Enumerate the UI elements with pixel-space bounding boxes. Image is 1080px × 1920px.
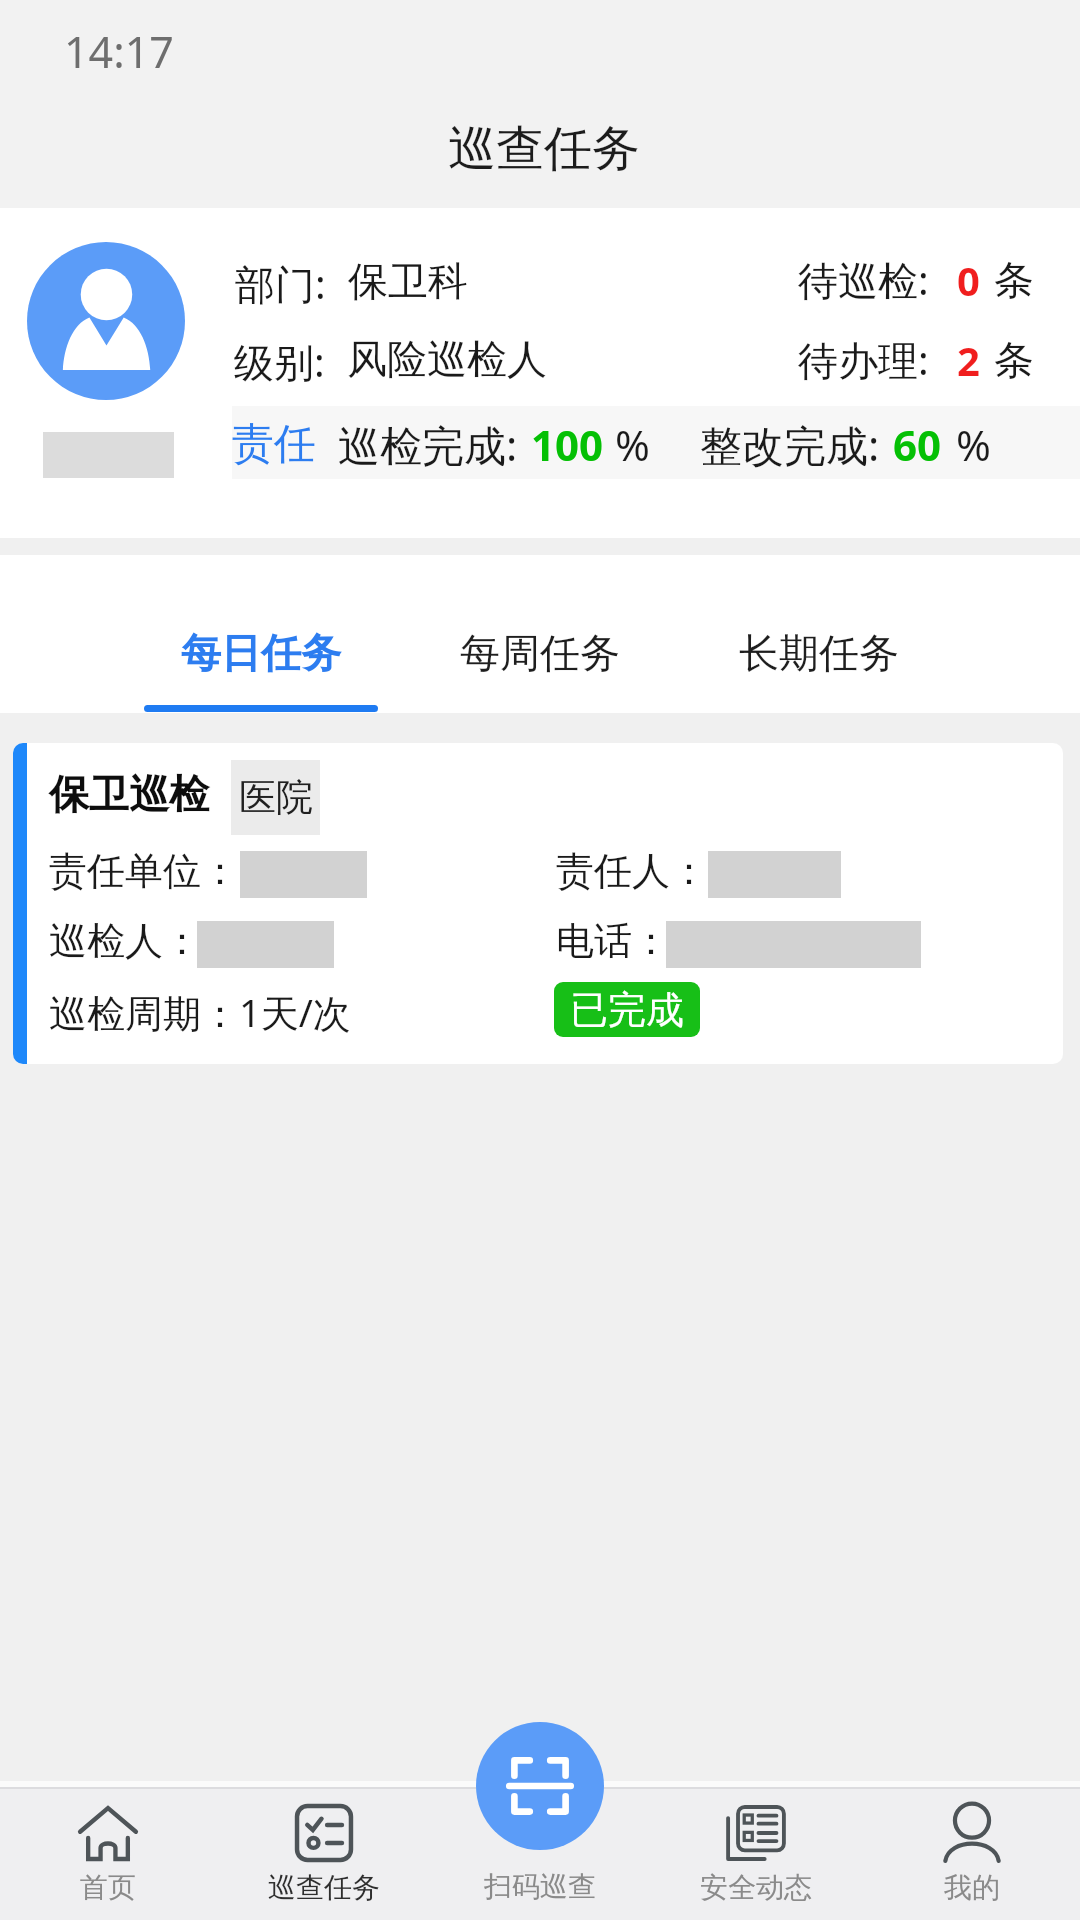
- staticText: 60: [893, 416, 942, 473]
- staticText: 巡检完成:: [338, 416, 518, 473]
- staticText: 责任人：: [556, 847, 708, 895]
- button[interactable]: 巡查任务: [216, 1788, 432, 1920]
- staticText: 我的: [944, 1870, 1000, 1905]
- staticText: 巡检周期：1天/次: [49, 986, 351, 1038]
- staticText: 保卫巡检: [49, 769, 209, 819]
- staticText: 14:17: [64, 22, 174, 81]
- button[interactable]: 保卫巡检: [13, 743, 1063, 1064]
- button[interactable]: 每日任务: [144, 555, 378, 713]
- staticText: 整改完成:: [700, 416, 880, 473]
- staticText: 已完成: [570, 986, 684, 1034]
- button[interactable]: 每周任务: [423, 555, 657, 713]
- staticText: 100: [531, 416, 604, 473]
- button[interactable]: 责任: [232, 418, 316, 471]
- staticText: %: [615, 416, 650, 473]
- staticText: 条: [994, 335, 1034, 385]
- staticText: 安全动态: [700, 1870, 812, 1905]
- button[interactable]: 扫码巡查: [476, 1722, 604, 1850]
- staticText: 首页: [80, 1870, 136, 1905]
- button[interactable]: 用户头像: [27, 242, 185, 400]
- staticText: 每日任务: [181, 628, 341, 678]
- staticText: 长期任务: [739, 628, 899, 678]
- staticText: 巡检人：: [49, 917, 201, 965]
- staticText: 待巡检:: [798, 252, 929, 307]
- staticText: 电话：: [556, 917, 670, 965]
- staticText: 0: [957, 253, 980, 307]
- staticText: 部门:: [235, 256, 326, 311]
- staticText: 巡查任务: [268, 1870, 380, 1905]
- staticText: 风险巡检人: [347, 334, 547, 384]
- staticText: 2: [957, 333, 980, 387]
- button[interactable]: 长期任务: [702, 555, 936, 713]
- button[interactable]: 我的: [864, 1788, 1080, 1920]
- button[interactable]: 首页: [0, 1788, 216, 1920]
- staticText: 每周任务: [460, 628, 620, 678]
- staticText: 巡查任务: [448, 119, 640, 179]
- button[interactable]: 安全动态: [648, 1788, 864, 1920]
- staticText: 保卫科: [348, 256, 468, 306]
- staticText: %: [956, 416, 991, 473]
- staticText: 待办理:: [798, 332, 929, 387]
- staticText: 扫码巡查: [484, 1869, 596, 1904]
- staticText: 条: [994, 255, 1034, 305]
- staticText: 责任单位：: [49, 847, 239, 895]
- staticText: 医院: [239, 774, 313, 821]
- staticText: 级别:: [234, 334, 325, 389]
